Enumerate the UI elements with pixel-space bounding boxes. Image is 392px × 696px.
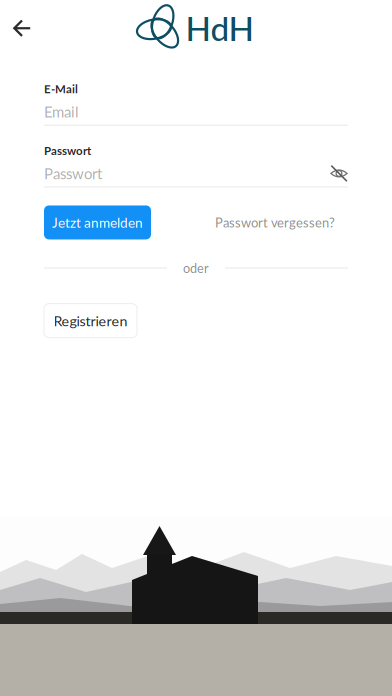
staticText: Passwort	[44, 164, 102, 182]
button[interactable]: Registrieren	[44, 304, 137, 338]
staticText: E-Mail	[44, 82, 78, 96]
staticText: Passwort vergessen?	[215, 215, 335, 230]
staticText: Registrieren	[53, 312, 127, 329]
button[interactable]: Jetzt anmelden	[44, 205, 151, 239]
button[interactable]: Show password	[330, 164, 348, 182]
staticText: HdH	[185, 8, 254, 48]
staticText: Jetzt anmelden	[52, 214, 143, 231]
staticText: Email	[44, 103, 79, 121]
staticText: oder	[183, 260, 209, 276]
button[interactable]: Passwort vergessen?	[215, 205, 335, 239]
staticText: Passwort	[44, 144, 91, 157]
button[interactable]: Back	[0, 6, 44, 50]
